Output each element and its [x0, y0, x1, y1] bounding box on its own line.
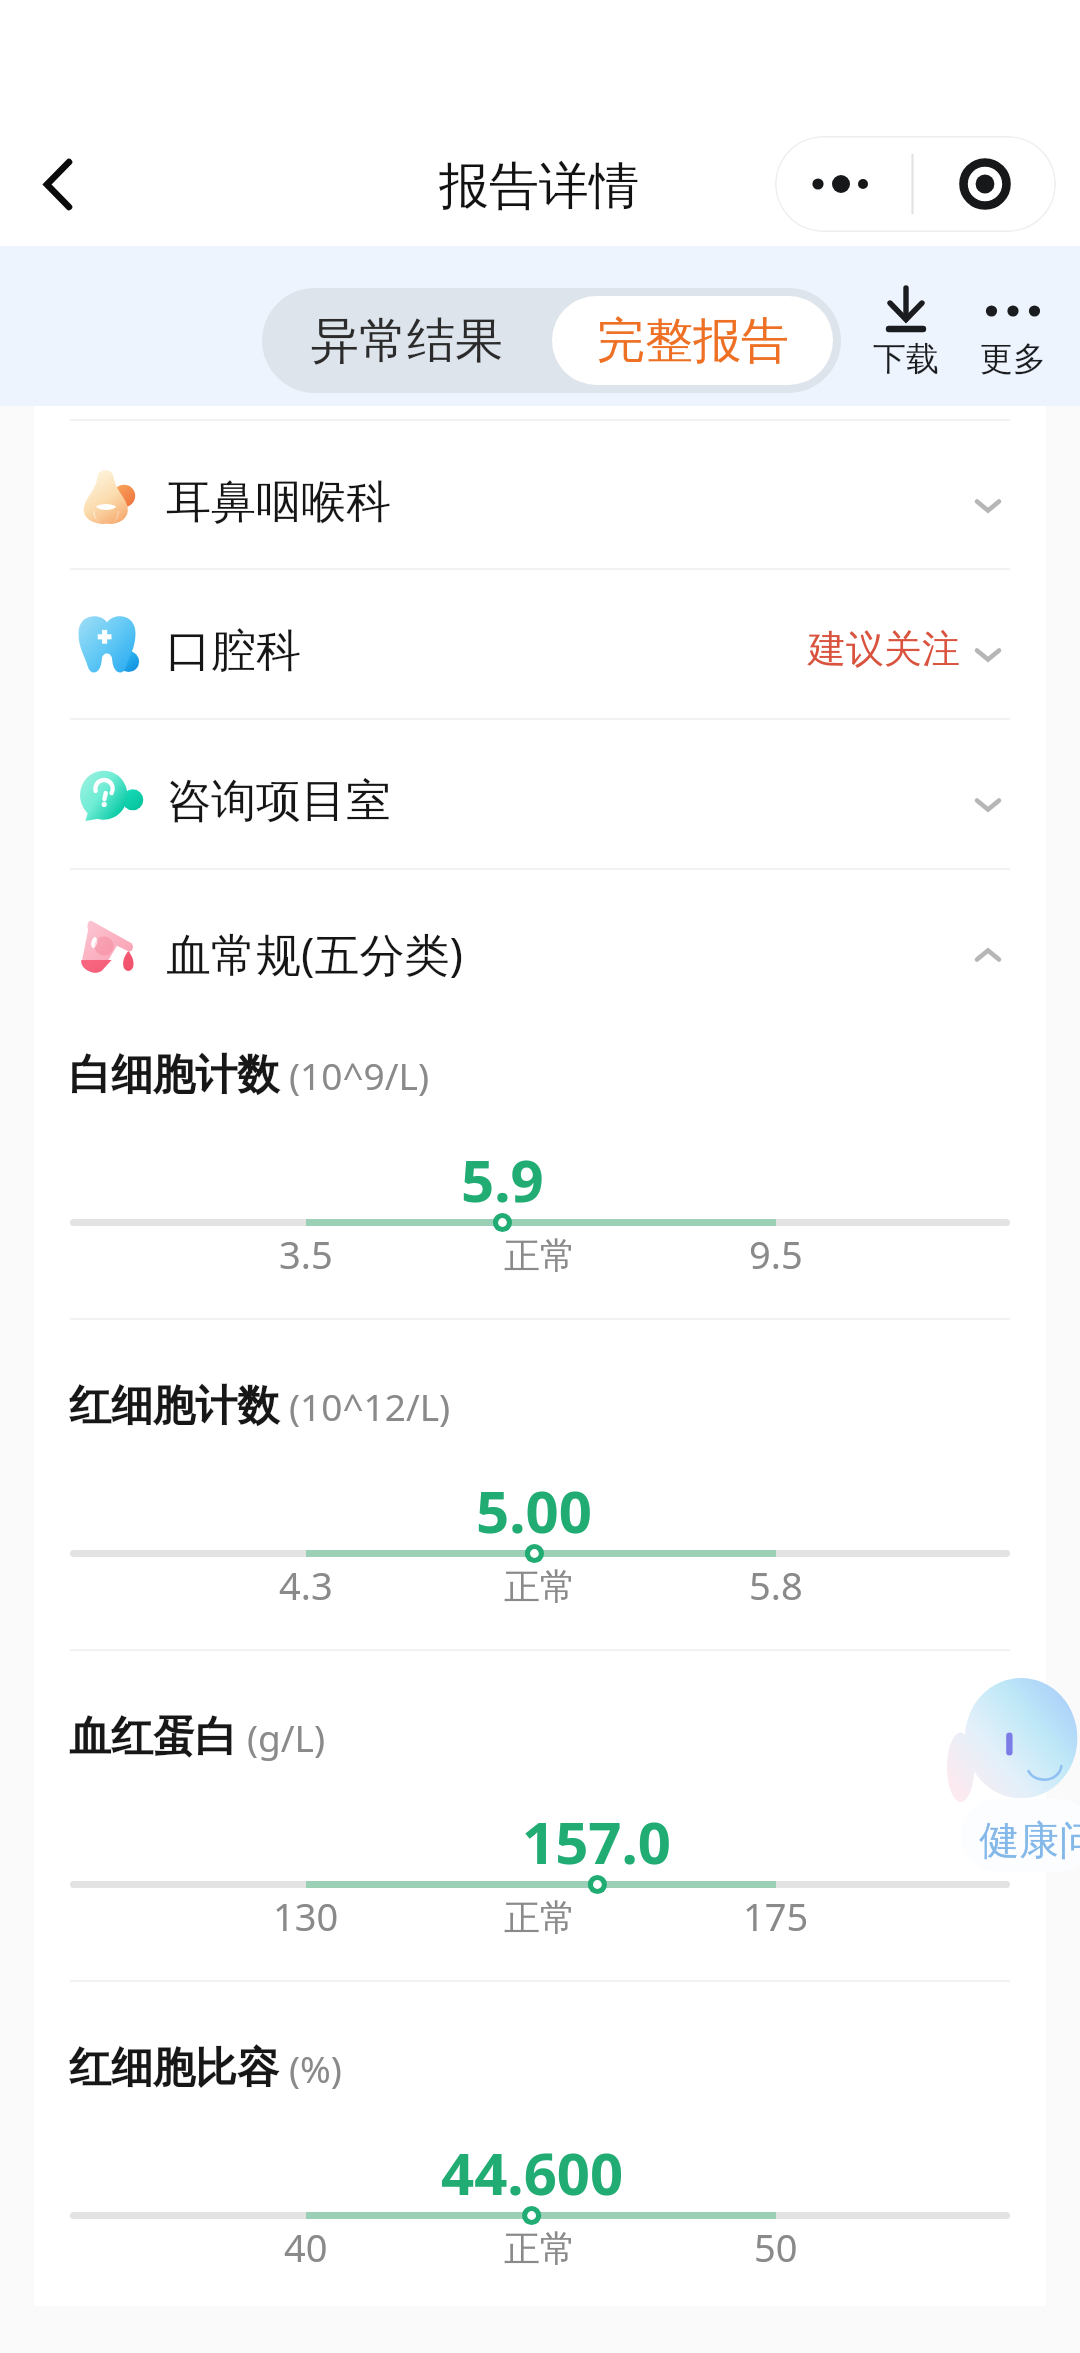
staticText: 更多 [980, 338, 1046, 380]
staticText: 9.5 [749, 1228, 803, 1280]
button[interactable]: Back [0, 140, 95, 230]
staticText: 正常 [504, 1564, 576, 1609]
staticText: 血常规(五分类) [166, 923, 464, 984]
staticText: 建议关注 [808, 625, 960, 673]
staticText: 耳鼻咽喉科 [166, 474, 391, 531]
staticText: 5.00 [476, 1471, 592, 1550]
button[interactable]: Health assistant [947, 1678, 1080, 1878]
staticText: 157.0 [522, 1802, 672, 1881]
staticText: 红细胞计数 [69, 1380, 279, 1433]
staticText: 50 [754, 2221, 798, 2273]
staticText: 175 [743, 1890, 809, 1942]
button[interactable]: 异常结果 [262, 288, 552, 393]
staticText: 咨询项目室 [166, 773, 391, 830]
staticText: 4.3 [279, 1559, 333, 1611]
staticText: (%) [289, 2043, 342, 2093]
staticText: 报告详情 [439, 155, 639, 218]
button[interactable]: 血常规(五分类) [34, 868, 1046, 1018]
button[interactable]: More [968, 274, 1058, 378]
staticText: (g/L) [247, 1712, 326, 1762]
staticText: 正常 [504, 1895, 576, 1940]
staticText: 5.9 [461, 1140, 544, 1219]
staticText: 完整报告 [597, 311, 789, 371]
staticText: 130 [273, 1890, 339, 1942]
staticText: 血红蛋白 [69, 1711, 237, 1764]
button[interactable]: 耳鼻咽喉科 [34, 419, 1046, 569]
staticText: 5.8 [749, 1559, 803, 1611]
staticText: 正常 [504, 1233, 576, 1278]
staticText: 健康问 [979, 1815, 1080, 1865]
staticText: 44.600 [441, 2133, 624, 2212]
staticText: 正常 [504, 2226, 576, 2271]
button[interactable]: 完整报告 [552, 296, 833, 385]
staticText: 白细胞计数 [69, 1049, 279, 1102]
button[interactable]: 咨询项目室 [34, 718, 1046, 868]
staticText: 下载 [873, 338, 939, 380]
button[interactable]: Menu [775, 136, 1056, 232]
staticText: 40 [284, 2221, 328, 2273]
staticText: 红细胞比容 [69, 2042, 279, 2095]
staticText: (10^9/L) [289, 1050, 430, 1100]
button[interactable]: 口腔科 [34, 568, 1046, 718]
staticText: (10^12/L) [289, 1381, 451, 1431]
staticText: 口腔科 [166, 623, 301, 680]
button[interactable]: Download [861, 274, 951, 378]
staticText: 异常结果 [311, 311, 503, 371]
staticText: 3.5 [279, 1228, 333, 1280]
